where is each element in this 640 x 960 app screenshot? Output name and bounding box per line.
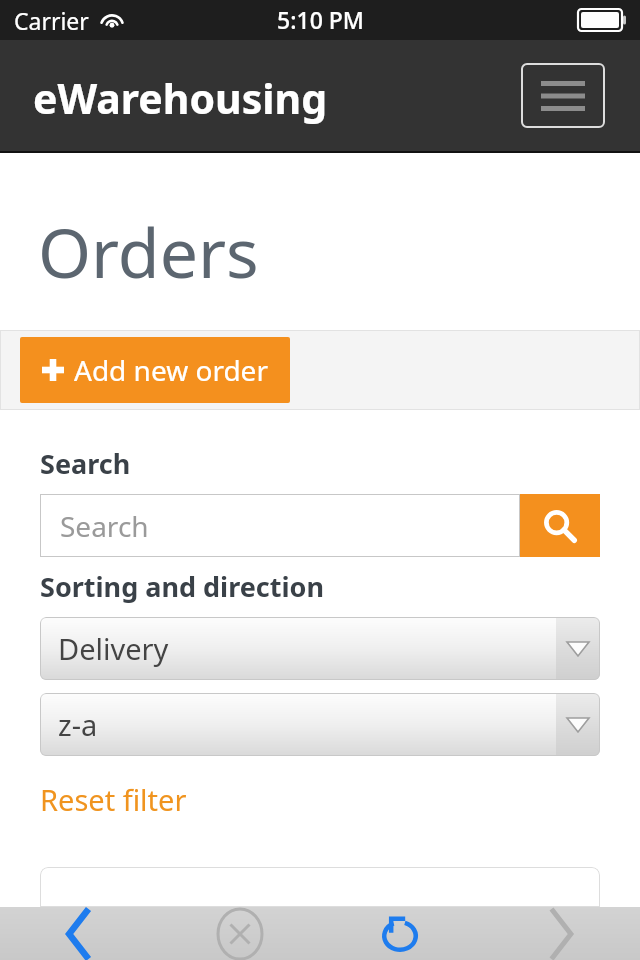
button[interactable]: Reset filter: [40, 780, 187, 819]
staticText: Carrier: [14, 5, 89, 36]
button[interactable]: Search: [40, 494, 520, 557]
staticText: Search: [60, 507, 149, 545]
button[interactable]: Menu: [521, 63, 605, 128]
button[interactable]: Search: [520, 494, 600, 557]
staticText: Sorting and direction: [40, 568, 324, 605]
button[interactable]: Reload: [320, 907, 480, 960]
staticText: z-a: [58, 705, 556, 744]
staticText: 5:10 PM: [277, 4, 364, 35]
button[interactable]: Back: [0, 907, 160, 960]
button[interactable]: Delivery: [40, 617, 600, 680]
staticText: Add new order: [74, 351, 268, 389]
staticText: Orders: [38, 205, 259, 298]
button[interactable]: z-a: [40, 693, 600, 756]
staticText: Delivery: [58, 629, 556, 668]
button[interactable]: Add new order: [20, 337, 290, 403]
button[interactable]: [40, 867, 600, 907]
staticText: Search: [40, 445, 131, 482]
button[interactable]: Stop: [160, 907, 320, 960]
button[interactable]: eWarehousing: [33, 70, 328, 126]
button[interactable]: Forward: [480, 907, 640, 960]
